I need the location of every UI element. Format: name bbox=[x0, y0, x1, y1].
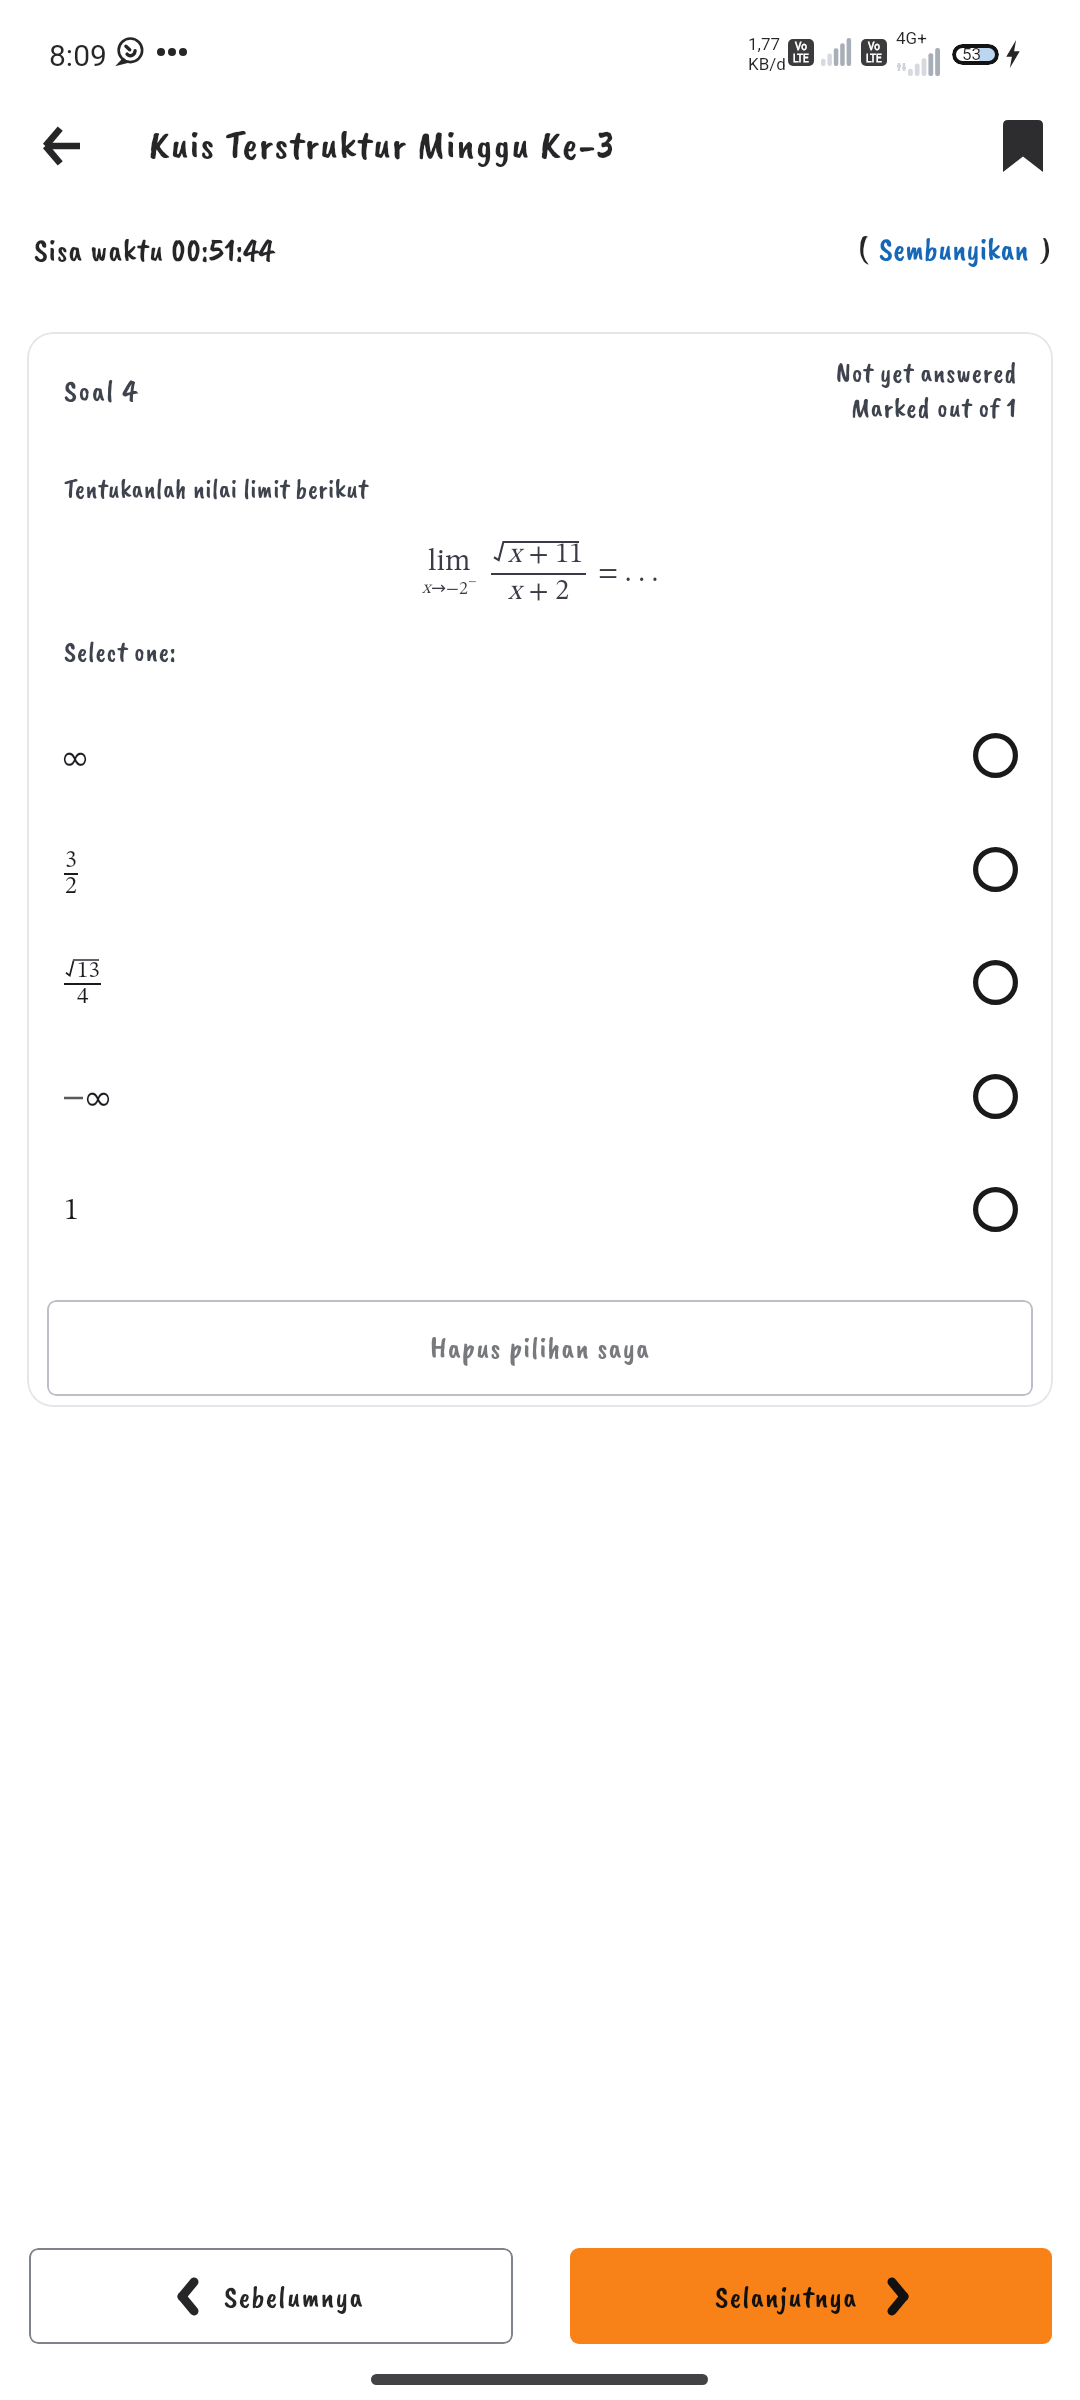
button[interactable]: 1 bbox=[27, 1153, 1053, 1265]
button[interactable]: ∞ bbox=[27, 1040, 1053, 1152]
staticText: ∞ bbox=[83, 1077, 113, 1119]
staticText: lim bbox=[428, 547, 471, 577]
staticText: ) bbox=[1041, 229, 1051, 269]
staticText: →−2 bbox=[431, 577, 468, 598]
button[interactable]: Sebelumnya bbox=[29, 2248, 513, 2344]
staticText: Select one: bbox=[64, 634, 177, 669]
staticText: 2 bbox=[65, 875, 77, 899]
staticText: 53 bbox=[962, 44, 982, 64]
button[interactable]: Bookmark bbox=[983, 106, 1063, 186]
staticText: x bbox=[508, 541, 522, 569]
staticText: Not yet answered bbox=[836, 355, 1018, 390]
staticText: LTE bbox=[866, 53, 882, 65]
staticText: x bbox=[508, 578, 522, 606]
button[interactable]: 3 bbox=[27, 813, 1053, 925]
staticText: Selanjutnya bbox=[715, 2277, 858, 2316]
staticText: − bbox=[468, 576, 477, 588]
staticText: Kuis Terstruktur Minggu Ke-3 bbox=[149, 119, 616, 171]
staticText: 8:09 bbox=[49, 38, 107, 73]
button[interactable]: 13 bbox=[27, 926, 1053, 1038]
staticText: Soal 4 bbox=[64, 372, 139, 410]
staticText: Marked out of 1 bbox=[851, 390, 1018, 425]
staticText: Sebelumnya bbox=[224, 2277, 364, 2316]
staticText: Vo bbox=[868, 41, 880, 53]
staticText: KB/d bbox=[748, 54, 786, 74]
staticText: 13 bbox=[77, 959, 100, 982]
button[interactable]: Selanjutnya bbox=[570, 2248, 1052, 2344]
staticText: ( bbox=[858, 229, 868, 269]
staticText: Sembunyikan bbox=[879, 229, 1029, 269]
button[interactable]: Hapus pilihan saya bbox=[47, 1300, 1033, 1396]
staticText: 4 bbox=[77, 985, 89, 1008]
staticText: LTE bbox=[793, 53, 809, 65]
staticText: 3 bbox=[65, 849, 77, 873]
button[interactable]: Back bbox=[21, 106, 101, 186]
button[interactable]: ( bbox=[858, 229, 1051, 269]
staticText: Tentukanlah nilai limit berikut bbox=[64, 472, 369, 506]
staticText: Vo bbox=[795, 41, 807, 53]
staticText: x bbox=[422, 579, 431, 597]
staticText: Sisa waktu 00:51:44 bbox=[34, 230, 275, 270]
staticText: + 2 bbox=[522, 578, 570, 606]
staticText: + 11 bbox=[522, 541, 584, 569]
button[interactable]: ∞ bbox=[27, 699, 1053, 811]
staticText: Hapus pilihan saya bbox=[430, 1329, 651, 1367]
staticText: 1 bbox=[64, 1196, 79, 1226]
staticText: 1,77 bbox=[748, 34, 781, 54]
staticText: ∞ bbox=[60, 737, 90, 779]
staticText: = . . . bbox=[598, 560, 659, 588]
staticText: 4G+ bbox=[896, 28, 927, 48]
